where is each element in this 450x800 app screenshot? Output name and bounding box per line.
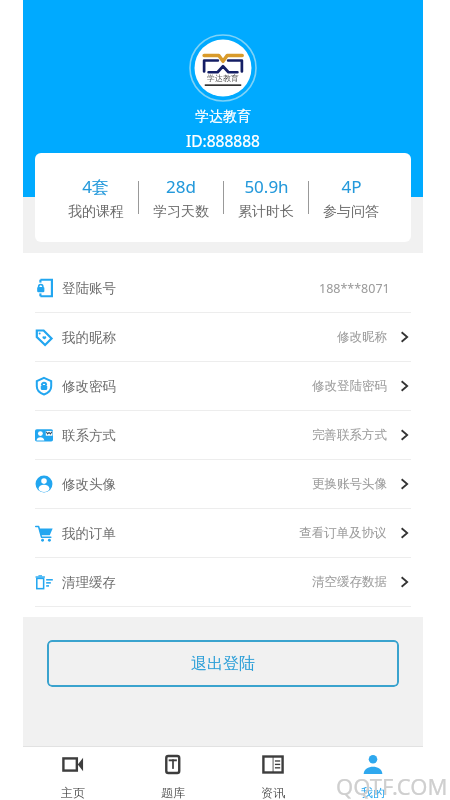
staticText: ID:888888	[186, 130, 260, 151]
staticText: 学习天数	[153, 203, 209, 221]
staticText: 4套	[82, 175, 109, 198]
staticText: 学达教育	[195, 108, 251, 126]
button[interactable]: 我的昵称	[23, 313, 423, 361]
staticText: 查看订单及协议	[299, 525, 387, 541]
button[interactable]: 4套	[53, 175, 138, 221]
button[interactable]: 修改密码	[23, 362, 423, 410]
staticText: 累计时长	[238, 203, 294, 221]
button[interactable]: 我的订单	[23, 509, 423, 557]
button[interactable]: 退出登陆	[47, 640, 399, 687]
staticText: 联系方式	[62, 427, 116, 444]
staticText: 我的订单	[62, 525, 116, 542]
button[interactable]: 登陆账号	[23, 264, 423, 312]
button[interactable]: 联系方式	[23, 411, 423, 459]
button[interactable]: 主页	[23, 746, 123, 800]
staticText: 学达教育	[207, 73, 239, 83]
button[interactable]: 修改头像	[23, 460, 423, 508]
staticText: 资讯	[261, 785, 285, 800]
staticText: 题库	[161, 785, 185, 800]
staticText: 28d	[166, 175, 196, 198]
button[interactable]: 我的	[323, 746, 423, 800]
staticText: 更换账号头像	[312, 476, 387, 492]
button[interactable]: 28d	[139, 175, 223, 221]
staticText: 50.9h	[244, 175, 289, 198]
staticText: 登陆账号	[62, 280, 116, 297]
staticText: 4P	[341, 175, 362, 198]
staticText: 修改头像	[62, 476, 116, 493]
staticText: 主页	[61, 785, 85, 800]
staticText: 修改昵称	[337, 329, 387, 345]
staticText: 清空缓存数据	[312, 574, 387, 590]
staticText: 完善联系方式	[312, 427, 387, 443]
button[interactable]: 50.9h	[224, 175, 308, 221]
button[interactable]: 清理缓存	[23, 558, 423, 606]
button[interactable]: 资讯	[223, 746, 323, 800]
staticText: 188***8071	[319, 280, 390, 297]
staticText: 修改登陆密码	[312, 378, 387, 394]
staticText: 我的课程	[68, 203, 124, 221]
button[interactable]: 题库	[123, 746, 223, 800]
staticText: QQTF.COM	[336, 771, 448, 800]
staticText: 清理缓存	[62, 574, 116, 591]
staticText: 修改密码	[62, 378, 116, 395]
staticText: 参与问答	[323, 203, 379, 221]
staticText: 我的	[361, 785, 385, 800]
button[interactable]: 4P	[309, 175, 393, 221]
staticText: 退出登陆	[191, 654, 255, 674]
staticText: 我的昵称	[62, 329, 116, 346]
